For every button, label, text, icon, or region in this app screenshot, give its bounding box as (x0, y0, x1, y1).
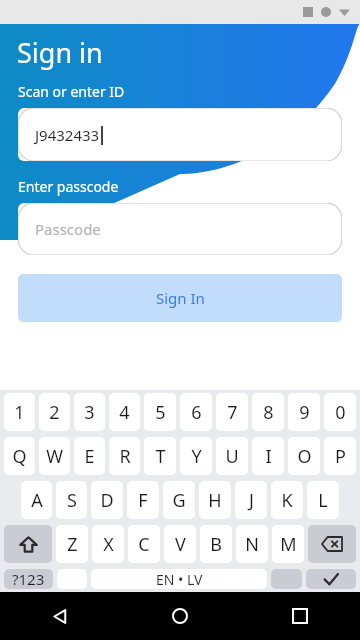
staticText: J (249, 488, 254, 513)
staticText: F (138, 488, 148, 513)
button[interactable]: 3 (74, 393, 105, 431)
staticText: O (297, 444, 312, 469)
staticText: 2 (49, 400, 60, 425)
staticText: J9432433 (35, 125, 100, 145)
staticText: Z (67, 532, 78, 557)
button[interactable]: Z (56, 525, 88, 563)
button[interactable]: U (216, 437, 248, 475)
button[interactable]: S (56, 481, 87, 519)
button[interactable]: Recent apps (240, 592, 360, 640)
staticText: ?123 (12, 569, 45, 589)
button[interactable]: K (271, 481, 303, 519)
staticText: Scan or enter ID (18, 82, 125, 101)
button[interactable]: Passcode (18, 203, 342, 255)
staticText: Passcode (35, 219, 101, 239)
button[interactable]: 2 (39, 393, 70, 431)
staticText: EN • LV (156, 570, 203, 589)
staticText: B (210, 532, 222, 557)
staticText: M (280, 532, 297, 557)
button[interactable]: 0 (324, 393, 356, 431)
staticText: P (335, 444, 346, 469)
button[interactable]: L (307, 481, 339, 519)
button[interactable]: 5 (144, 393, 176, 431)
staticText: Sign In (156, 288, 205, 308)
button[interactable]: EN • LV (91, 569, 267, 589)
staticText: Sign in (17, 34, 103, 71)
button[interactable]: V (164, 525, 196, 563)
button[interactable]: O (288, 437, 320, 475)
staticText: N (245, 532, 259, 557)
staticText: 6 (191, 400, 202, 425)
staticText: L (318, 488, 328, 513)
staticText: G (172, 488, 186, 513)
button[interactable]: W (39, 437, 70, 475)
button[interactable]: Enter (306, 569, 356, 589)
button[interactable]: 1 (4, 393, 35, 431)
button[interactable]: 6 (180, 393, 212, 431)
button[interactable]: ?123 (4, 569, 53, 589)
button[interactable]: G (163, 481, 195, 519)
staticText: Q (12, 444, 27, 469)
staticText: V (175, 532, 186, 557)
button[interactable]: B (200, 525, 232, 563)
staticText: H (208, 488, 222, 513)
button[interactable]: J (235, 481, 267, 519)
staticText: 8 (263, 400, 274, 425)
staticText: U (225, 444, 239, 469)
staticText: T (155, 444, 166, 469)
button[interactable]: P (324, 437, 356, 475)
staticText: R (119, 444, 131, 469)
button[interactable]: F (127, 481, 159, 519)
button[interactable]: Home (120, 592, 240, 640)
button[interactable]: 7 (216, 393, 248, 431)
staticText: 4 (119, 400, 130, 425)
button[interactable]: 8 (252, 393, 284, 431)
staticText: S (67, 488, 77, 513)
staticText: C (138, 532, 150, 557)
button[interactable]: M (272, 525, 304, 563)
button[interactable]: Sign In (18, 274, 342, 322)
button[interactable]: Y (180, 437, 212, 475)
staticText: 5 (155, 400, 166, 425)
button[interactable]: R (109, 437, 140, 475)
staticText: 0 (335, 400, 346, 425)
staticText: 1 (14, 400, 25, 425)
button[interactable]: A (21, 481, 52, 519)
staticText: 3 (84, 400, 95, 425)
button[interactable]: X (92, 525, 124, 563)
button[interactable]: . (271, 569, 302, 589)
staticText: W (46, 444, 63, 469)
staticText: A (31, 488, 43, 513)
staticText: 7 (227, 400, 238, 425)
button[interactable]: Back (0, 592, 120, 640)
button[interactable]: T (144, 437, 176, 475)
button[interactable]: D (91, 481, 123, 519)
button[interactable]: Backspace (308, 525, 356, 563)
button[interactable]: I (252, 437, 284, 475)
staticText: K (281, 488, 293, 513)
button[interactable]: C (128, 525, 160, 563)
staticText: Enter passcode (18, 177, 119, 196)
button[interactable]: Q (4, 437, 35, 475)
button[interactable]: N (236, 525, 268, 563)
staticText: X (103, 532, 114, 557)
staticText: I (265, 444, 272, 469)
button[interactable]: , (57, 569, 87, 589)
button[interactable]: 4 (109, 393, 140, 431)
staticText: E (84, 444, 95, 469)
button[interactable]: J9432433 (18, 108, 342, 161)
button[interactable]: E (74, 437, 105, 475)
staticText: Y (191, 444, 202, 469)
staticText: D (100, 488, 114, 513)
button[interactable]: 9 (288, 393, 320, 431)
button[interactable]: H (199, 481, 231, 519)
button[interactable]: Shift (4, 525, 52, 563)
staticText: 9 (299, 400, 310, 425)
